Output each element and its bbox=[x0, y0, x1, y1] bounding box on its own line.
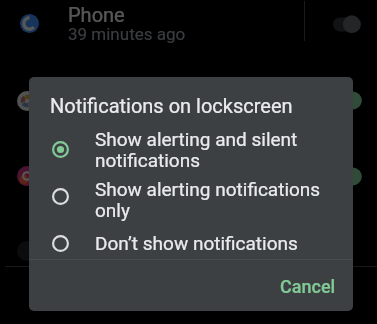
button[interactable]: Toggle app notifications bbox=[334, 90, 362, 111]
staticText: Show alerting notifications only bbox=[95, 178, 321, 221]
button[interactable]: App notification settings bbox=[17, 166, 37, 186]
button[interactable]: Show alerting and silent notifications bbox=[29, 126, 353, 172]
staticText: Cancel bbox=[280, 276, 336, 297]
button[interactable]: Toggle app notifications bbox=[334, 166, 362, 187]
button[interactable]: Toggle notifications bbox=[333, 14, 361, 35]
button[interactable]: Don’t show notifications bbox=[29, 220, 353, 266]
staticText: Notifications on lockscreen bbox=[50, 94, 293, 117]
button[interactable]: Phone bbox=[0, 0, 377, 50]
staticText: 39 minutes ago bbox=[68, 24, 186, 44]
staticText: Don’t show notifications bbox=[95, 232, 298, 254]
button[interactable]: Cancel bbox=[268, 267, 348, 306]
button[interactable]: App notification settings bbox=[17, 91, 37, 111]
staticText: Show alerting and silent notifications bbox=[95, 128, 298, 171]
button[interactable]: App notification settings bbox=[17, 241, 37, 261]
button[interactable]: Show alerting notifications only bbox=[29, 173, 353, 219]
staticText: Phone bbox=[68, 3, 125, 26]
